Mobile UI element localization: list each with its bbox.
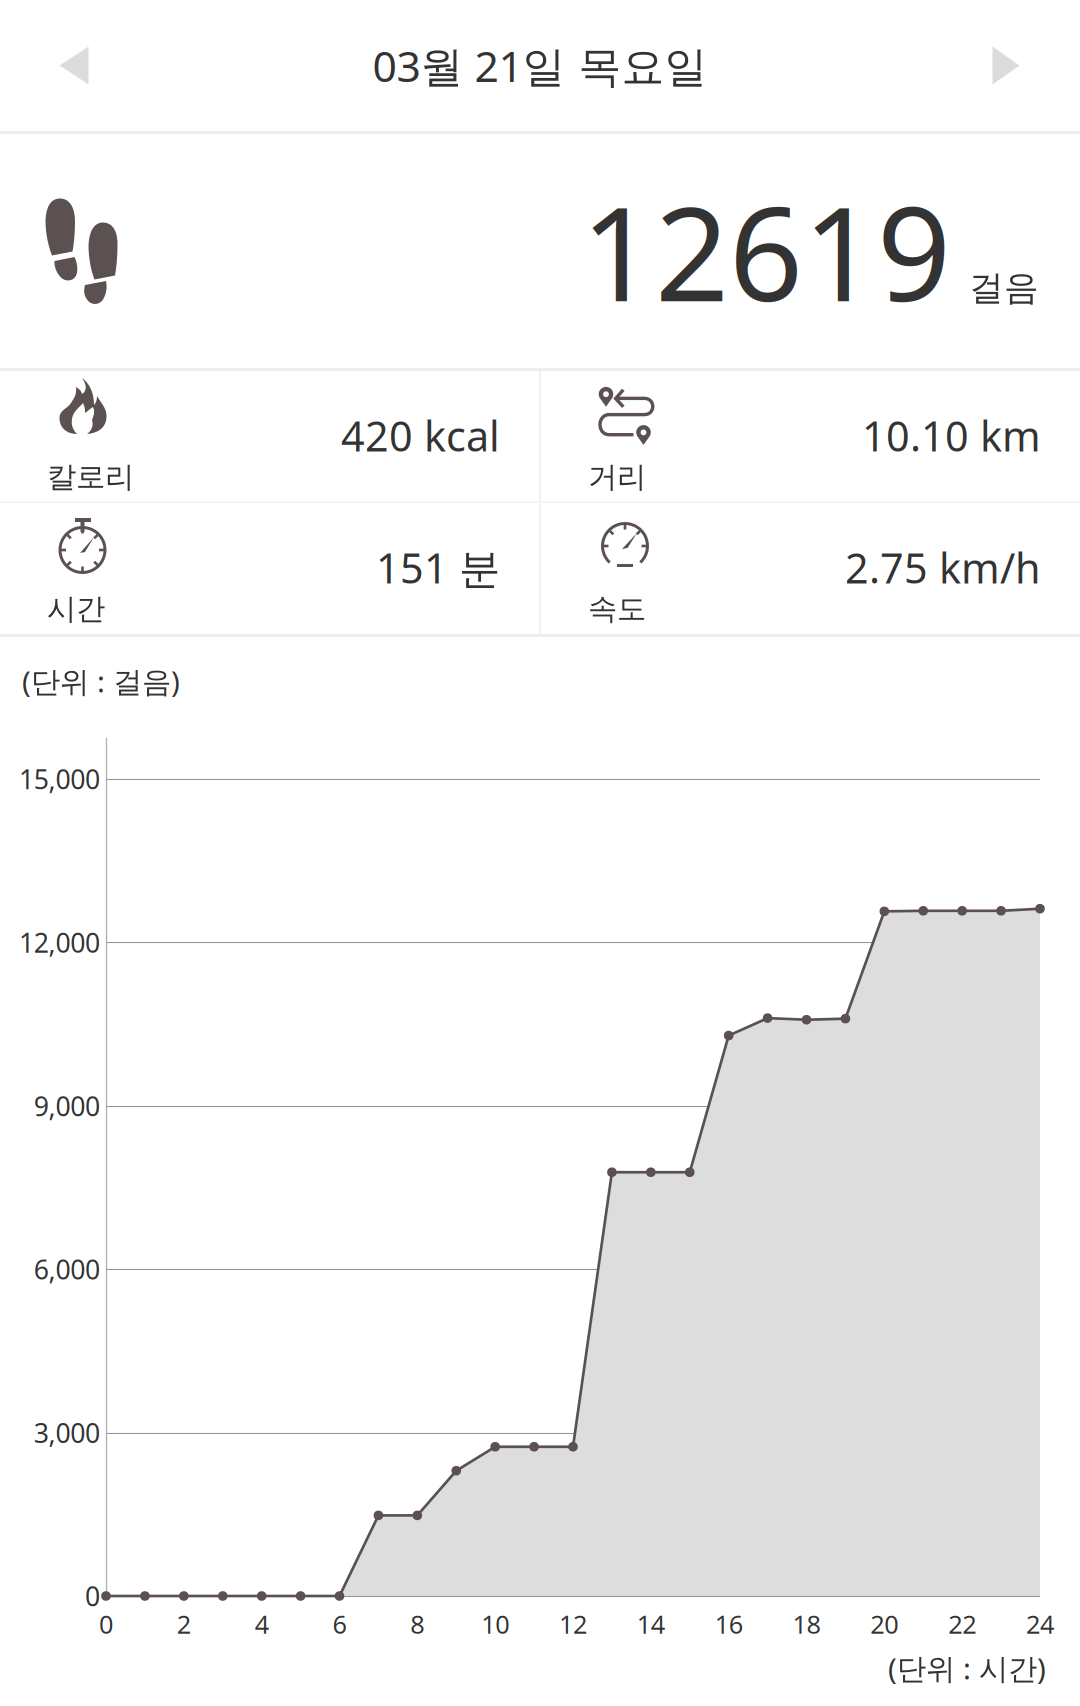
button[interactable]: 칼로리 [0, 371, 539, 501]
staticText: 03월 21일 목요일 [372, 37, 707, 94]
staticText: 10.10 km [862, 408, 1041, 463]
staticText: 6,000 [34, 1251, 100, 1287]
staticText: 12 [559, 1607, 587, 1641]
button[interactable]: Previous day [0, 0, 148, 131]
button[interactable]: 시간 [0, 503, 539, 634]
staticText: 6 [332, 1607, 346, 1641]
staticText: 2 [177, 1607, 191, 1641]
staticText: 걸음 [969, 267, 1039, 309]
staticText: 4 [255, 1607, 269, 1641]
staticText: 8 [410, 1607, 424, 1641]
staticText: (단위 : 시간) [888, 1648, 1046, 1687]
staticText: 24 [1026, 1607, 1054, 1641]
staticText: 시간 [47, 591, 105, 627]
staticText: 거리 [588, 459, 646, 495]
staticText: 151 분 [376, 540, 500, 595]
staticText: 칼로리 [47, 459, 134, 495]
staticText: 9,000 [34, 1088, 100, 1123]
staticText: 16 [715, 1607, 743, 1641]
staticText: 10 [481, 1607, 509, 1641]
staticText: 속도 [588, 591, 646, 627]
staticText: 15,000 [19, 761, 100, 797]
staticText: 0 [99, 1607, 113, 1641]
button[interactable]: 속도 [541, 503, 1080, 634]
button[interactable]: Next day [932, 0, 1080, 131]
staticText: (단위 : 걸음) [22, 661, 180, 700]
staticText: 12,000 [19, 925, 100, 960]
staticText: 3,000 [34, 1415, 100, 1450]
staticText: 20 [870, 1607, 898, 1641]
staticText: 14 [637, 1607, 665, 1641]
staticText: 18 [792, 1607, 820, 1641]
staticText: 22 [948, 1607, 976, 1641]
staticText: 2.75 km/h [845, 540, 1041, 595]
staticText: 420 kcal [341, 408, 500, 463]
staticText: 12619 [581, 165, 951, 337]
staticText: 0 [85, 1578, 100, 1614]
button[interactable]: 거리 [541, 371, 1080, 501]
